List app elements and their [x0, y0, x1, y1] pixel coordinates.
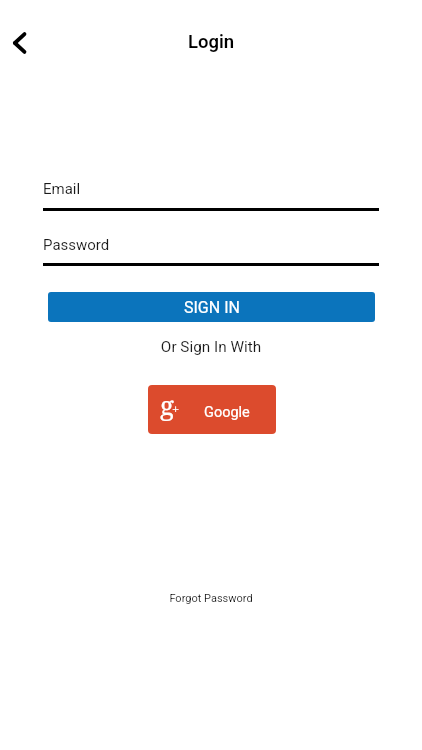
staticText: Login	[0, 31, 422, 53]
button[interactable]: g	[148, 385, 276, 434]
staticText: g	[160, 387, 174, 422]
button[interactable]: Back	[0, 21, 43, 65]
staticText: Google	[204, 404, 250, 421]
button[interactable]: SIGN IN	[48, 292, 375, 322]
staticText: +	[172, 400, 180, 418]
button[interactable]: Email	[43, 176, 379, 211]
button[interactable]: Password	[43, 232, 379, 266]
staticText: Email	[43, 180, 81, 198]
staticText: Or Sign In With	[0, 338, 422, 356]
staticText: Password	[43, 236, 110, 254]
staticText: SIGN IN	[184, 298, 240, 317]
button[interactable]: Forgot Password	[156, 586, 266, 610]
staticText: Forgot Password	[169, 592, 253, 605]
